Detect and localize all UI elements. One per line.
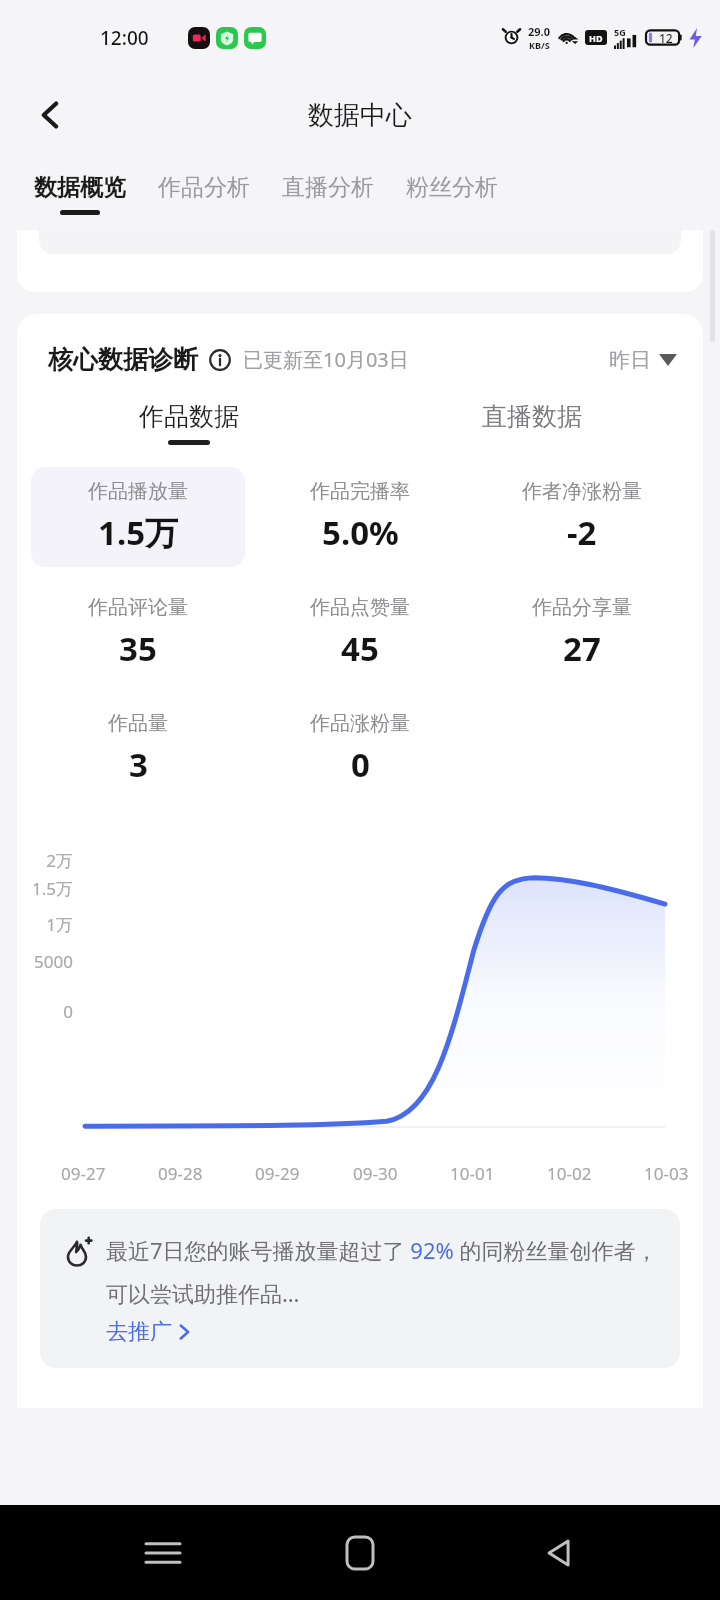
staticText: 作品分享量 (532, 595, 632, 620)
button[interactable]: 作品数据 (17, 401, 360, 445)
button[interactable]: 数据概览 (34, 173, 126, 215)
staticText: 09-29 (255, 1162, 300, 1185)
staticText: 10-03 (644, 1162, 689, 1185)
staticText: 作品分析 (158, 173, 250, 202)
staticText: 10-01 (450, 1162, 495, 1185)
button[interactable]: 作品播放量 (31, 467, 245, 567)
staticText: 直播数据 (482, 401, 582, 432)
staticText: 数据概览 (34, 173, 126, 202)
staticText: 09-28 (158, 1162, 203, 1185)
button[interactable]: 作品涨粉量 (253, 699, 467, 799)
button[interactable]: 直播数据 (360, 401, 703, 445)
button[interactable]: 去推广 (106, 1318, 192, 1346)
staticText: 3 (129, 742, 148, 787)
staticText: 1.5万 (98, 510, 179, 555)
button[interactable]: 返回 (523, 1518, 593, 1588)
staticText: 09-30 (353, 1162, 398, 1185)
staticText: 作者净涨粉量 (522, 479, 642, 504)
staticText: 作品播放量 (88, 479, 188, 504)
staticText: 数据中心 (308, 99, 412, 132)
staticText: 直播分析 (282, 173, 374, 202)
staticText: 0 (351, 742, 370, 787)
button[interactable]: 说明 (207, 347, 233, 373)
staticText: 10-02 (547, 1162, 592, 1185)
staticText: 5000 (25, 950, 73, 973)
button[interactable]: 最近任务 (128, 1518, 198, 1588)
staticText: 09-27 (61, 1162, 106, 1185)
staticText: 作品量 (108, 711, 168, 736)
staticText: 12:00 (100, 25, 149, 51)
staticText: KB/S (529, 39, 550, 51)
button[interactable]: 作品量 (31, 699, 245, 799)
staticText: 作品涨粉量 (310, 711, 410, 736)
staticText: 1.5万 (25, 877, 73, 900)
staticText: 作品点赞量 (310, 595, 410, 620)
staticText: 5G (614, 26, 626, 38)
staticText: 0 (25, 1000, 73, 1023)
button[interactable]: 作品完播率 (253, 467, 467, 567)
staticText: 12 (659, 30, 673, 46)
staticText: 去推广 (106, 1318, 172, 1346)
staticText: 最近7日您的账号播放量超过了 92% 的同粉丝量创作者，可以尝试助推作品… (106, 1235, 660, 1308)
button[interactable]: 作品分析 (158, 173, 250, 210)
staticText: 2万 (25, 849, 73, 872)
button[interactable]: 粉丝分析 (406, 173, 498, 210)
button[interactable]: 昨日 (609, 347, 677, 373)
button[interactable]: 作品分享量 (475, 583, 689, 683)
staticText: 35 (119, 626, 157, 671)
button[interactable]: 作品评论量 (31, 583, 245, 683)
button[interactable]: 最近7日您的账号播放量超过了 92% 的同粉丝量创作者，可以尝试助推作品… (40, 1209, 680, 1368)
button[interactable]: 主页 (325, 1518, 395, 1588)
staticText: 45 (341, 626, 379, 671)
staticText: 27 (563, 626, 601, 671)
staticText: 5.0% (322, 510, 399, 555)
staticText: 作品评论量 (88, 595, 188, 620)
staticText: 粉丝分析 (406, 173, 498, 202)
staticText: -2 (567, 510, 597, 555)
staticText: 已更新至10月03日 (243, 346, 409, 373)
staticText: 作品完播率 (310, 479, 410, 504)
staticText: 1万 (25, 913, 73, 936)
button[interactable]: 直播分析 (282, 173, 374, 210)
staticText: 作品数据 (139, 401, 239, 432)
staticText: 昨日 (609, 347, 651, 373)
staticText: 29.0 (528, 24, 550, 39)
staticText: HD (589, 32, 603, 44)
staticText: 核心数据诊断 (48, 344, 198, 375)
button[interactable]: 作品点赞量 (253, 583, 467, 683)
button[interactable]: 返回 (22, 86, 80, 144)
button[interactable]: 作者净涨粉量 (475, 467, 689, 567)
